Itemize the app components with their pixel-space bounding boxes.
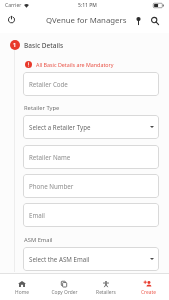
staticText: All Basic Details are Mandatory xyxy=(36,61,114,68)
button[interactable]: Select the ASM Email xyxy=(23,247,159,271)
button[interactable]: Phone Number xyxy=(23,174,159,198)
staticText: 1 xyxy=(13,41,17,49)
staticText: 5:11 PM xyxy=(78,2,97,9)
button[interactable]: Search xyxy=(147,13,162,28)
staticText: QVenue for Managers xyxy=(46,15,127,26)
button[interactable]: Retailer Code xyxy=(23,72,159,96)
staticText: Phone Number xyxy=(29,182,74,190)
staticText: Retailer Code xyxy=(29,80,68,88)
staticText: Basic Details xyxy=(24,41,64,50)
staticText: Home xyxy=(15,289,29,296)
button[interactable]: Select a Retailer Type xyxy=(23,115,159,139)
button[interactable]: Location xyxy=(131,13,146,28)
staticText: Select a Retailer Type xyxy=(29,123,91,131)
staticText: Retailer Name xyxy=(29,153,71,161)
button[interactable]: Copy Order xyxy=(43,274,85,300)
button[interactable]: Create xyxy=(127,274,169,300)
button[interactable]: Power / Logout xyxy=(4,12,19,27)
button[interactable]: Retailer Name xyxy=(23,145,159,169)
staticText: ASM Email xyxy=(24,236,53,244)
button[interactable]: Email xyxy=(23,203,159,227)
staticText: Create xyxy=(141,289,156,296)
button[interactable]: Retailers xyxy=(85,274,127,300)
staticText: Email xyxy=(29,211,45,219)
staticText: Copy Order xyxy=(51,289,78,296)
staticText: Retailers xyxy=(96,289,116,296)
staticText: Retailer Type xyxy=(24,104,60,112)
staticText: Select the ASM Email xyxy=(29,255,90,263)
button[interactable]: Home xyxy=(0,274,43,300)
staticText: Carrier xyxy=(5,2,22,9)
